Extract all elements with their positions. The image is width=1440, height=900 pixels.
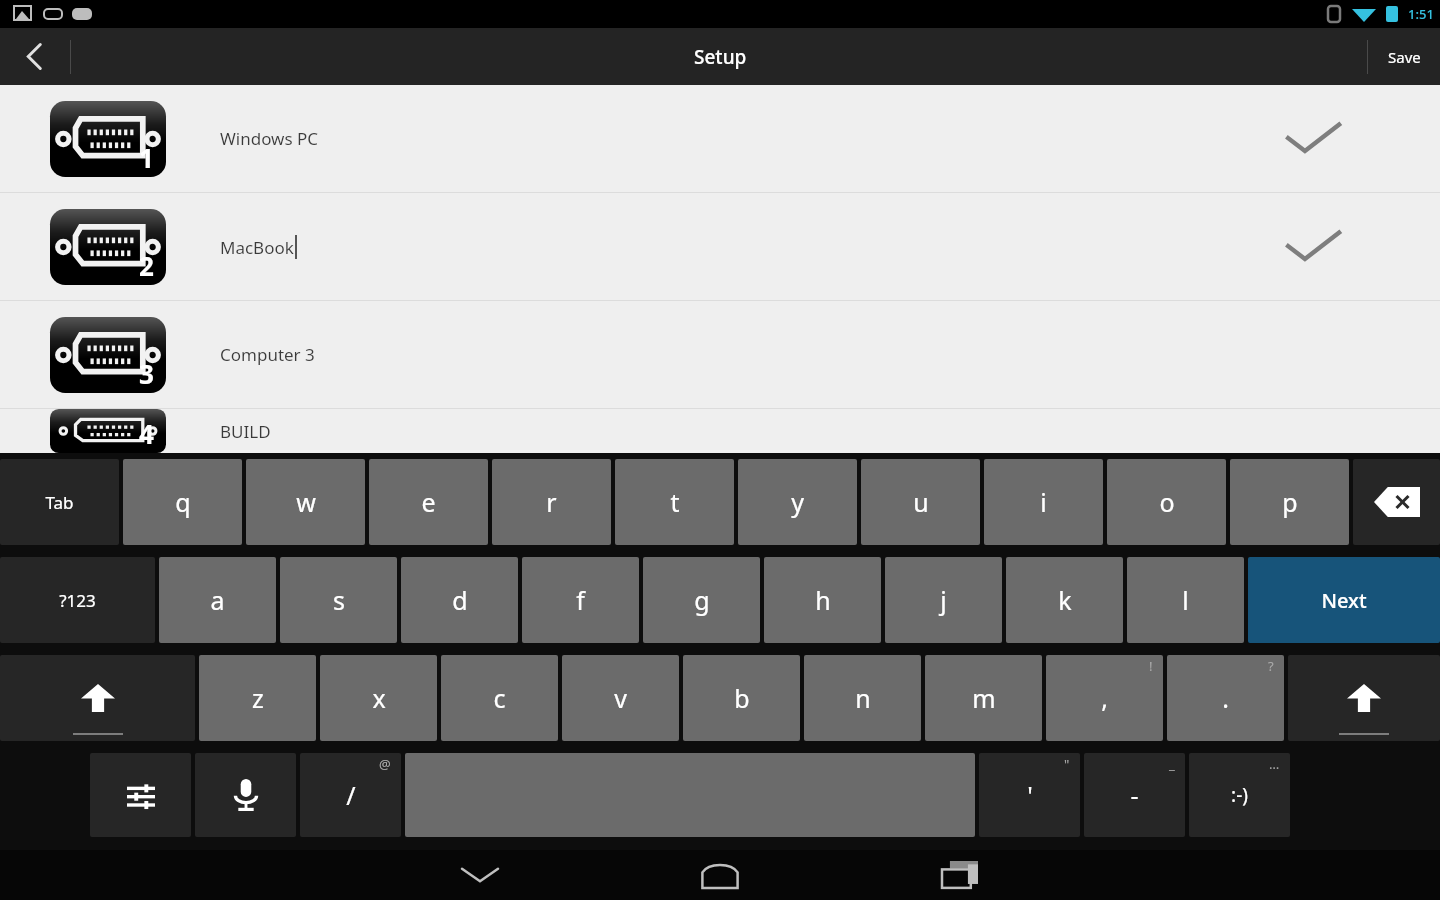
- staticText: ": [1064, 755, 1070, 773]
- staticText: l: [1182, 583, 1189, 617]
- button[interactable]: b: [683, 655, 800, 741]
- button[interactable]: x: [320, 655, 437, 741]
- button[interactable]: p: [1230, 459, 1349, 545]
- button[interactable]: y: [738, 459, 857, 545]
- staticText: 2: [139, 248, 154, 283]
- button[interactable]: Shift: [1288, 655, 1440, 741]
- button[interactable]: Tab: [0, 459, 119, 545]
- button[interactable]: o: [1107, 459, 1226, 545]
- staticText: q: [175, 485, 191, 519]
- button[interactable]: Shift: [0, 655, 195, 741]
- button[interactable]: Keyboard settings: [90, 753, 191, 837]
- button[interactable]: Back: [0, 28, 70, 85]
- staticText: x: [372, 681, 386, 715]
- button[interactable]: Hide keyboard: [410, 850, 550, 900]
- staticText: w: [296, 485, 316, 519]
- button[interactable]: !: [1046, 655, 1163, 741]
- button[interactable]: ?123: [0, 557, 155, 643]
- staticText: s: [333, 583, 345, 617]
- staticText: v: [614, 681, 627, 715]
- button[interactable]: u: [861, 459, 980, 545]
- staticText: …: [1269, 755, 1280, 773]
- button[interactable]: Save: [1368, 28, 1440, 85]
- button[interactable]: d: [401, 557, 518, 643]
- staticText: /: [346, 778, 356, 812]
- staticText: Save: [1388, 47, 1421, 67]
- staticText: ?: [1268, 657, 1274, 675]
- staticText: !: [1149, 657, 1153, 675]
- staticText: .: [1222, 681, 1229, 715]
- button[interactable]: Home: [650, 850, 790, 900]
- staticText: b: [734, 681, 750, 715]
- button[interactable]: a: [159, 557, 276, 643]
- staticText: u: [913, 485, 929, 519]
- button[interactable]: r: [492, 459, 611, 545]
- button[interactable]: f: [522, 557, 639, 643]
- staticText: z: [252, 681, 264, 715]
- staticText: @: [379, 755, 391, 773]
- staticText: 1: [139, 140, 154, 175]
- staticText: a: [210, 583, 225, 617]
- button[interactable]: j: [885, 557, 1002, 643]
- button[interactable]: m: [925, 655, 1042, 741]
- staticText: Windows PC: [220, 127, 319, 150]
- staticText: ?123: [59, 589, 96, 612]
- button[interactable]: l: [1127, 557, 1244, 643]
- staticText: i: [1040, 485, 1047, 519]
- button[interactable]: _: [1084, 753, 1185, 837]
- button[interactable]: z: [199, 655, 316, 741]
- staticText: 1:51: [1408, 5, 1434, 23]
- button[interactable]: v: [562, 655, 679, 741]
- staticText: m: [972, 681, 996, 715]
- staticText: ': [1027, 778, 1033, 812]
- staticText: k: [1058, 583, 1072, 617]
- staticText: _: [1169, 755, 1175, 773]
- button[interactable]: w: [246, 459, 365, 545]
- button[interactable]: @: [300, 753, 401, 837]
- staticText: o: [1159, 485, 1175, 519]
- button[interactable]: 4: [0, 409, 1440, 453]
- staticText: c: [493, 681, 506, 715]
- button[interactable]: e: [369, 459, 488, 545]
- staticText: Setup: [694, 44, 747, 70]
- staticText: :-): [1231, 782, 1248, 808]
- button[interactable]: 1: [0, 85, 1440, 192]
- staticText: Tab: [45, 491, 74, 514]
- button[interactable]: …: [1189, 753, 1290, 837]
- button[interactable]: ": [979, 753, 1080, 837]
- button[interactable]: t: [615, 459, 734, 545]
- button[interactable]: ?: [1167, 655, 1284, 741]
- button[interactable]: Recent apps: [890, 850, 1030, 900]
- button[interactable]: n: [804, 655, 921, 741]
- button[interactable]: Backspace: [1353, 459, 1440, 545]
- staticText: j: [940, 583, 947, 617]
- button[interactable]: Voice input: [195, 753, 296, 837]
- button[interactable]: q: [123, 459, 242, 545]
- button[interactable]: i: [984, 459, 1103, 545]
- button[interactable]: c: [441, 655, 558, 741]
- staticText: t: [670, 485, 680, 519]
- staticText: -: [1130, 778, 1139, 812]
- button[interactable]: 3: [0, 301, 1440, 408]
- staticText: Next: [1321, 587, 1367, 614]
- staticText: 4: [139, 416, 154, 451]
- button[interactable]: h: [764, 557, 881, 643]
- staticText: g: [694, 583, 710, 617]
- staticText: p: [1282, 485, 1298, 519]
- button[interactable]: k: [1006, 557, 1123, 643]
- button[interactable]: s: [280, 557, 397, 643]
- staticText: h: [815, 583, 831, 617]
- staticText: ,: [1101, 681, 1108, 715]
- staticText: f: [576, 583, 585, 617]
- staticText: BUILD: [220, 420, 271, 443]
- staticText: Computer 3: [220, 343, 315, 366]
- staticText: 3: [139, 356, 154, 391]
- staticText: MacBook: [220, 236, 294, 259]
- staticText: d: [452, 583, 468, 617]
- button[interactable]: Next: [1248, 557, 1440, 643]
- button[interactable]: 2: [0, 193, 1440, 300]
- staticText: y: [791, 485, 804, 519]
- staticText: e: [421, 485, 436, 519]
- button[interactable]: g: [643, 557, 760, 643]
